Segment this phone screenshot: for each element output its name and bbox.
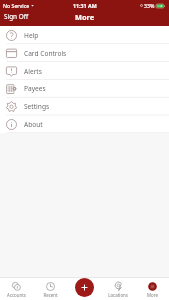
staticText: Settings [24, 102, 50, 111]
staticText: More [75, 12, 95, 22]
button[interactable]: Alerts [0, 62, 169, 80]
button[interactable]: More [135, 277, 169, 300]
button[interactable]: Recent [33, 277, 67, 300]
button[interactable]: Add [75, 278, 94, 297]
button[interactable]: Sign Off [0, 10, 35, 26]
staticText: Recent [43, 292, 58, 298]
button[interactable]: Card Controls [0, 44, 169, 62]
button[interactable]: Settings [0, 97, 169, 115]
button[interactable]: Locations [101, 277, 135, 300]
button[interactable]: Accounts [0, 277, 33, 300]
button[interactable]: Help [0, 26, 169, 44]
staticText: Alerts [24, 67, 42, 76]
staticText: Payees [24, 84, 46, 93]
staticText: 11:31 AM [73, 2, 97, 9]
button[interactable]: Payees [0, 79, 169, 97]
staticText: No Service [3, 2, 30, 9]
staticText: More [147, 292, 158, 298]
staticText: About [24, 120, 43, 129]
staticText: Accounts [7, 292, 26, 298]
staticText: 33% [144, 2, 155, 9]
button[interactable]: About [0, 115, 169, 133]
staticText: Help [24, 31, 39, 40]
staticText: Card Controls [24, 49, 67, 58]
staticText: Locations [108, 292, 128, 298]
